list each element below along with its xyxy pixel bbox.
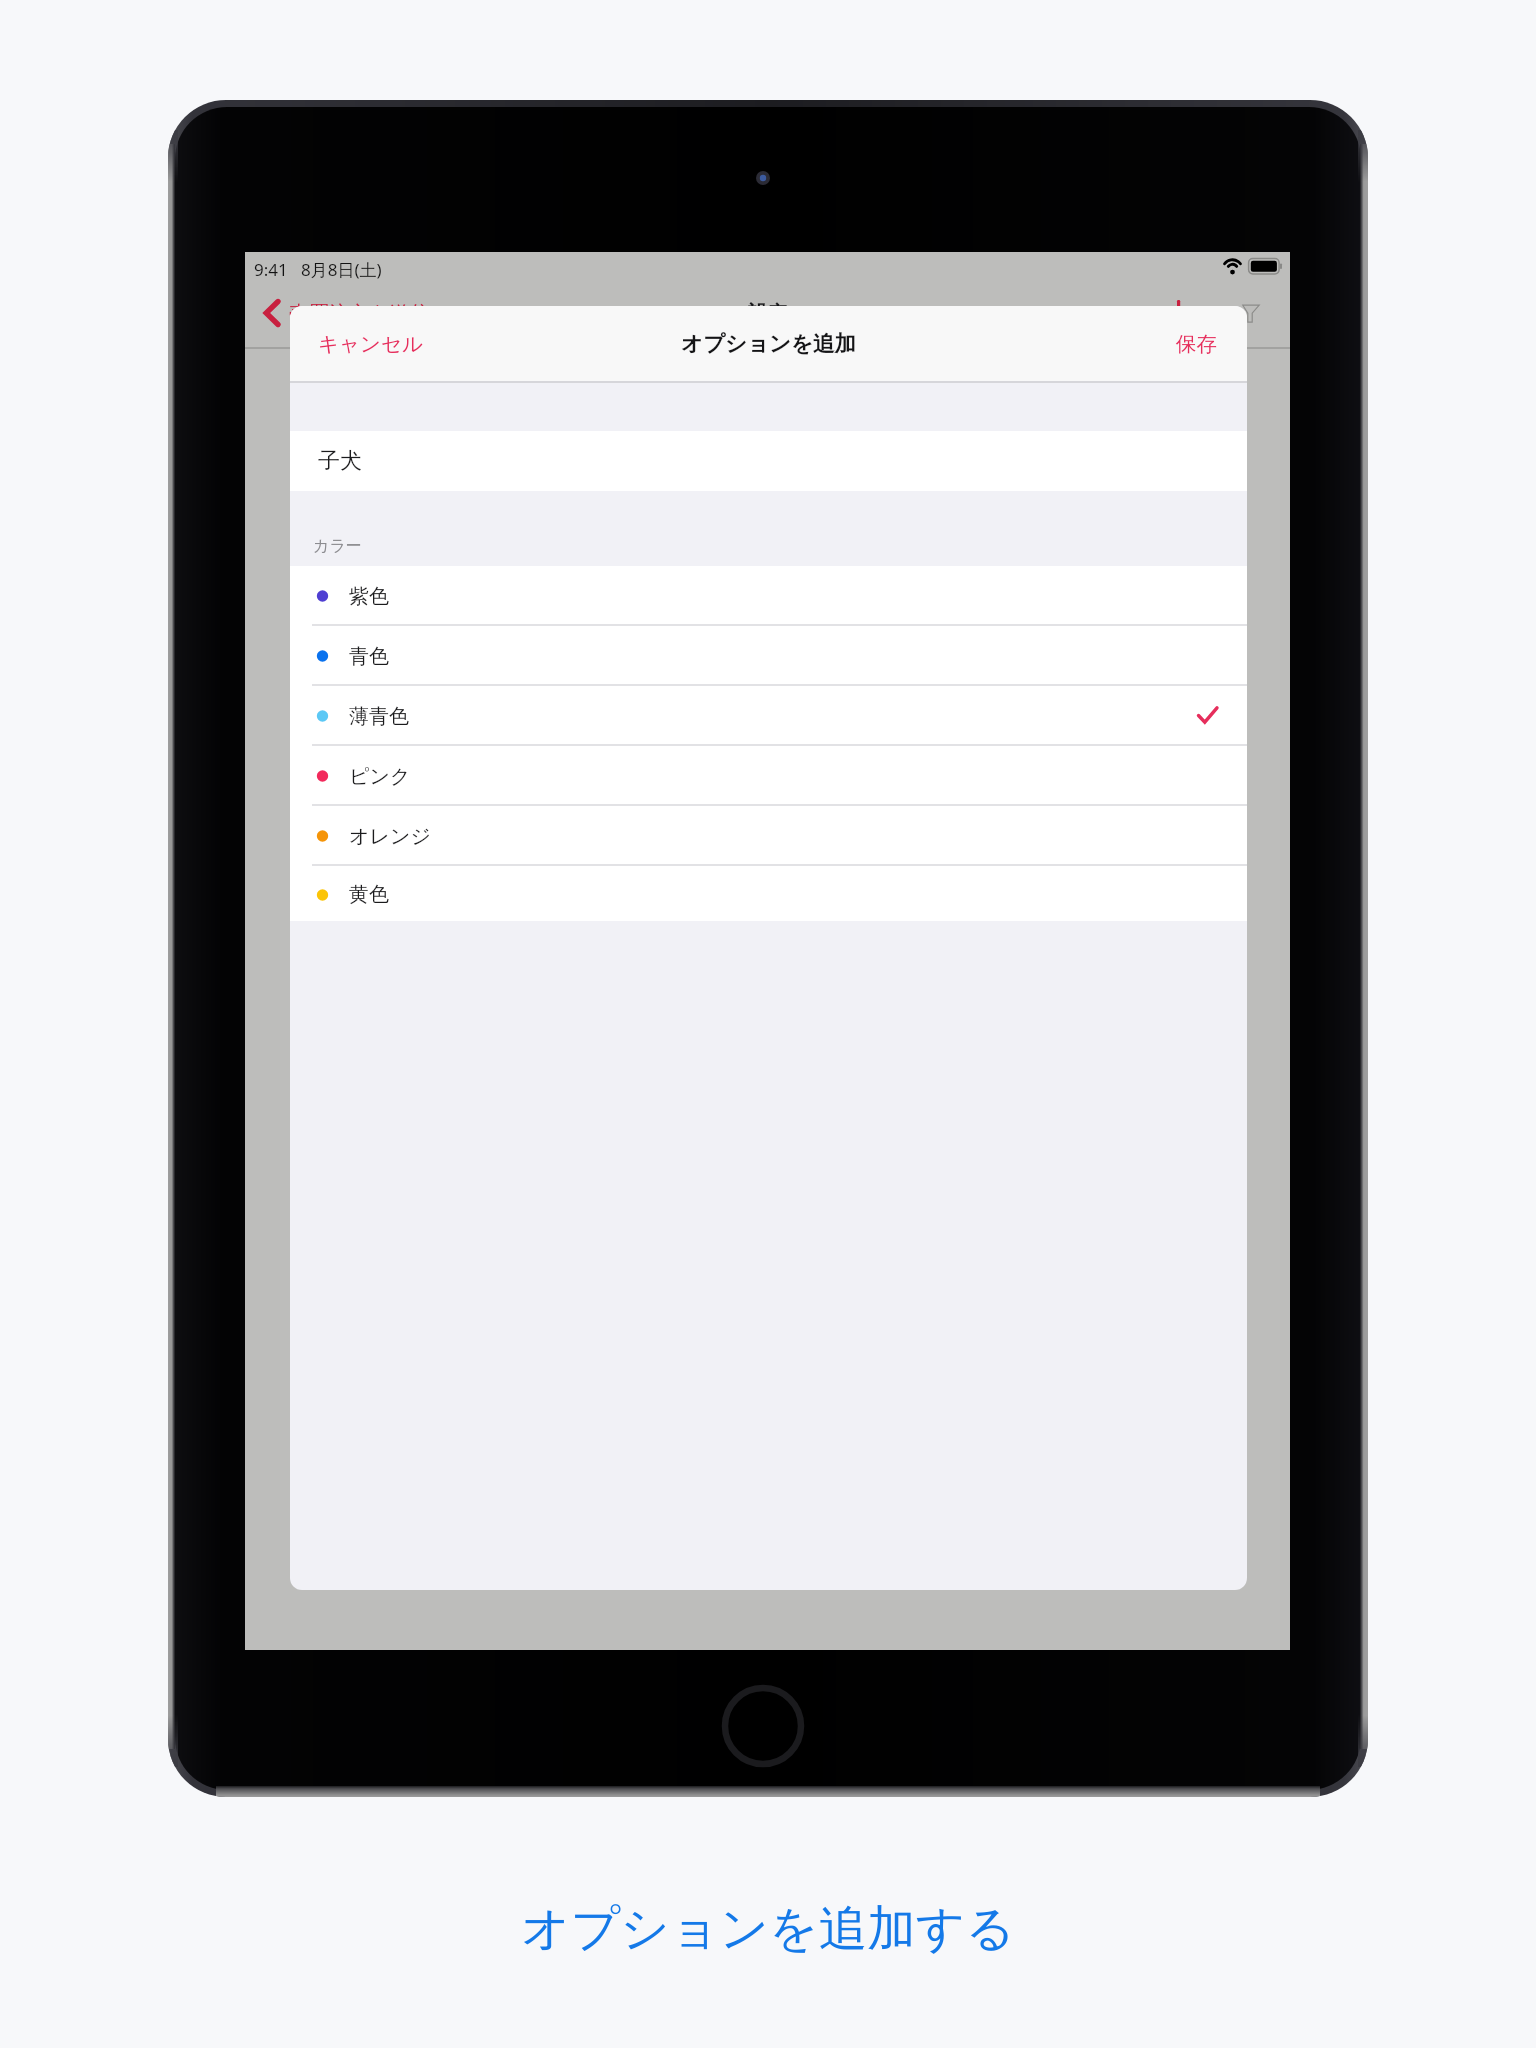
staticText: オプションを追加する	[521, 1898, 1016, 1959]
button[interactable]: 薄青色	[290, 686, 1247, 744]
button[interactable]: 青色	[290, 626, 1247, 684]
button[interactable]: ピンク	[290, 746, 1247, 804]
staticText: 保存	[1176, 331, 1217, 357]
staticText: 黄色	[349, 882, 389, 907]
other: Back	[262, 299, 282, 329]
other: Filter	[1242, 304, 1262, 324]
button[interactable]: 紫色	[290, 566, 1247, 624]
button[interactable]: 保存	[1152, 306, 1247, 381]
button[interactable]: 黄色	[290, 866, 1247, 921]
staticText: カラー	[313, 536, 362, 556]
staticText: オレンジ	[349, 824, 431, 849]
staticText: 設定	[748, 301, 788, 326]
button[interactable]: 子犬	[290, 431, 1247, 491]
staticText: 薄青色	[349, 704, 409, 729]
staticText: 子犬	[318, 447, 362, 475]
staticText: キャンセル	[318, 331, 423, 357]
staticText: ピンク	[349, 764, 411, 789]
staticText: 売買注文を送信	[289, 301, 430, 326]
other: Home	[718, 1681, 808, 1771]
button[interactable]: オレンジ	[290, 806, 1247, 864]
staticText: オプションを追加	[681, 330, 857, 357]
staticText: 紫色	[349, 584, 389, 609]
staticText: 9:41 8月8日(土)	[254, 258, 382, 281]
button[interactable]: キャンセル	[290, 306, 447, 381]
staticText: 青色	[349, 644, 389, 669]
